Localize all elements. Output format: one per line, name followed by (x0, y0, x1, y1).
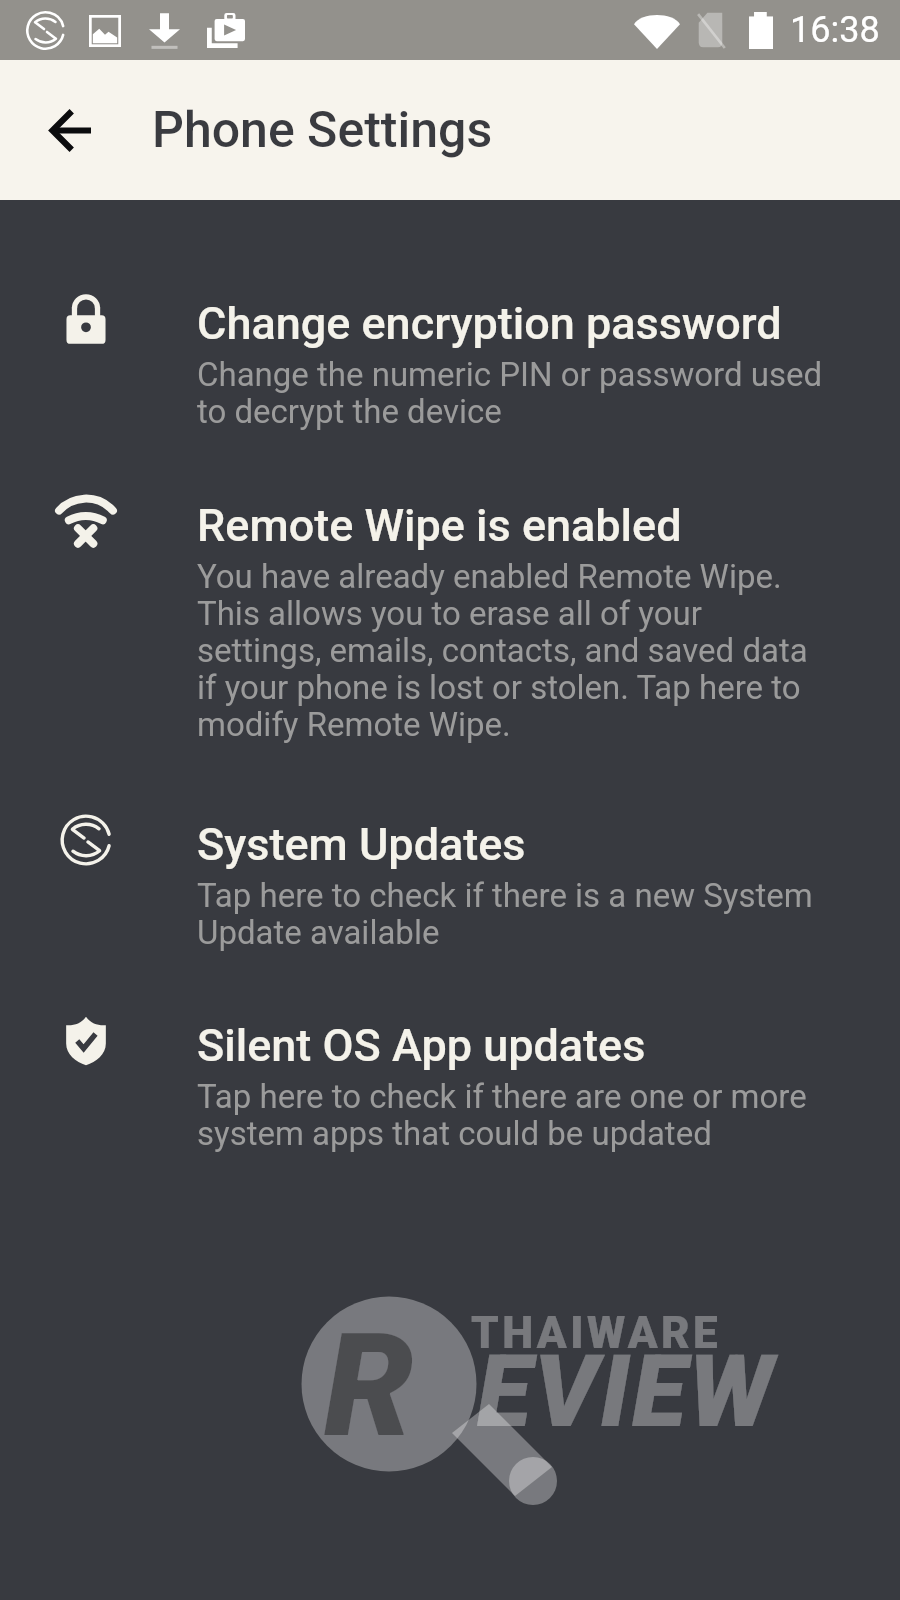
staticText: THAIWARE (471, 1307, 722, 1359)
staticText: R (324, 1303, 414, 1469)
staticText: System Updates (197, 808, 526, 873)
button[interactable]: System Updates (0, 808, 900, 1009)
staticText: Change the numeric PIN or password used … (197, 357, 829, 431)
staticText: Tap here to check if there are one or mo… (197, 1079, 829, 1153)
staticText: 16:38 (790, 9, 880, 51)
staticText: Tap here to check if there is a new Syst… (197, 878, 829, 952)
button[interactable]: Change encryption password (0, 287, 900, 489)
staticText: Silent OS App updates (197, 1009, 646, 1074)
button[interactable]: Remote Wipe is enabled (0, 489, 900, 808)
button[interactable]: Back (26, 86, 114, 174)
staticText: Change encryption password (197, 287, 782, 352)
staticText: Remote Wipe is enabled (197, 489, 682, 554)
staticText: EVIEW (477, 1333, 776, 1450)
button[interactable]: Silent OS App updates (0, 1009, 900, 1153)
staticText: Phone Settings (152, 101, 493, 160)
staticText: You have already enabled Remote Wipe. Th… (197, 559, 829, 744)
